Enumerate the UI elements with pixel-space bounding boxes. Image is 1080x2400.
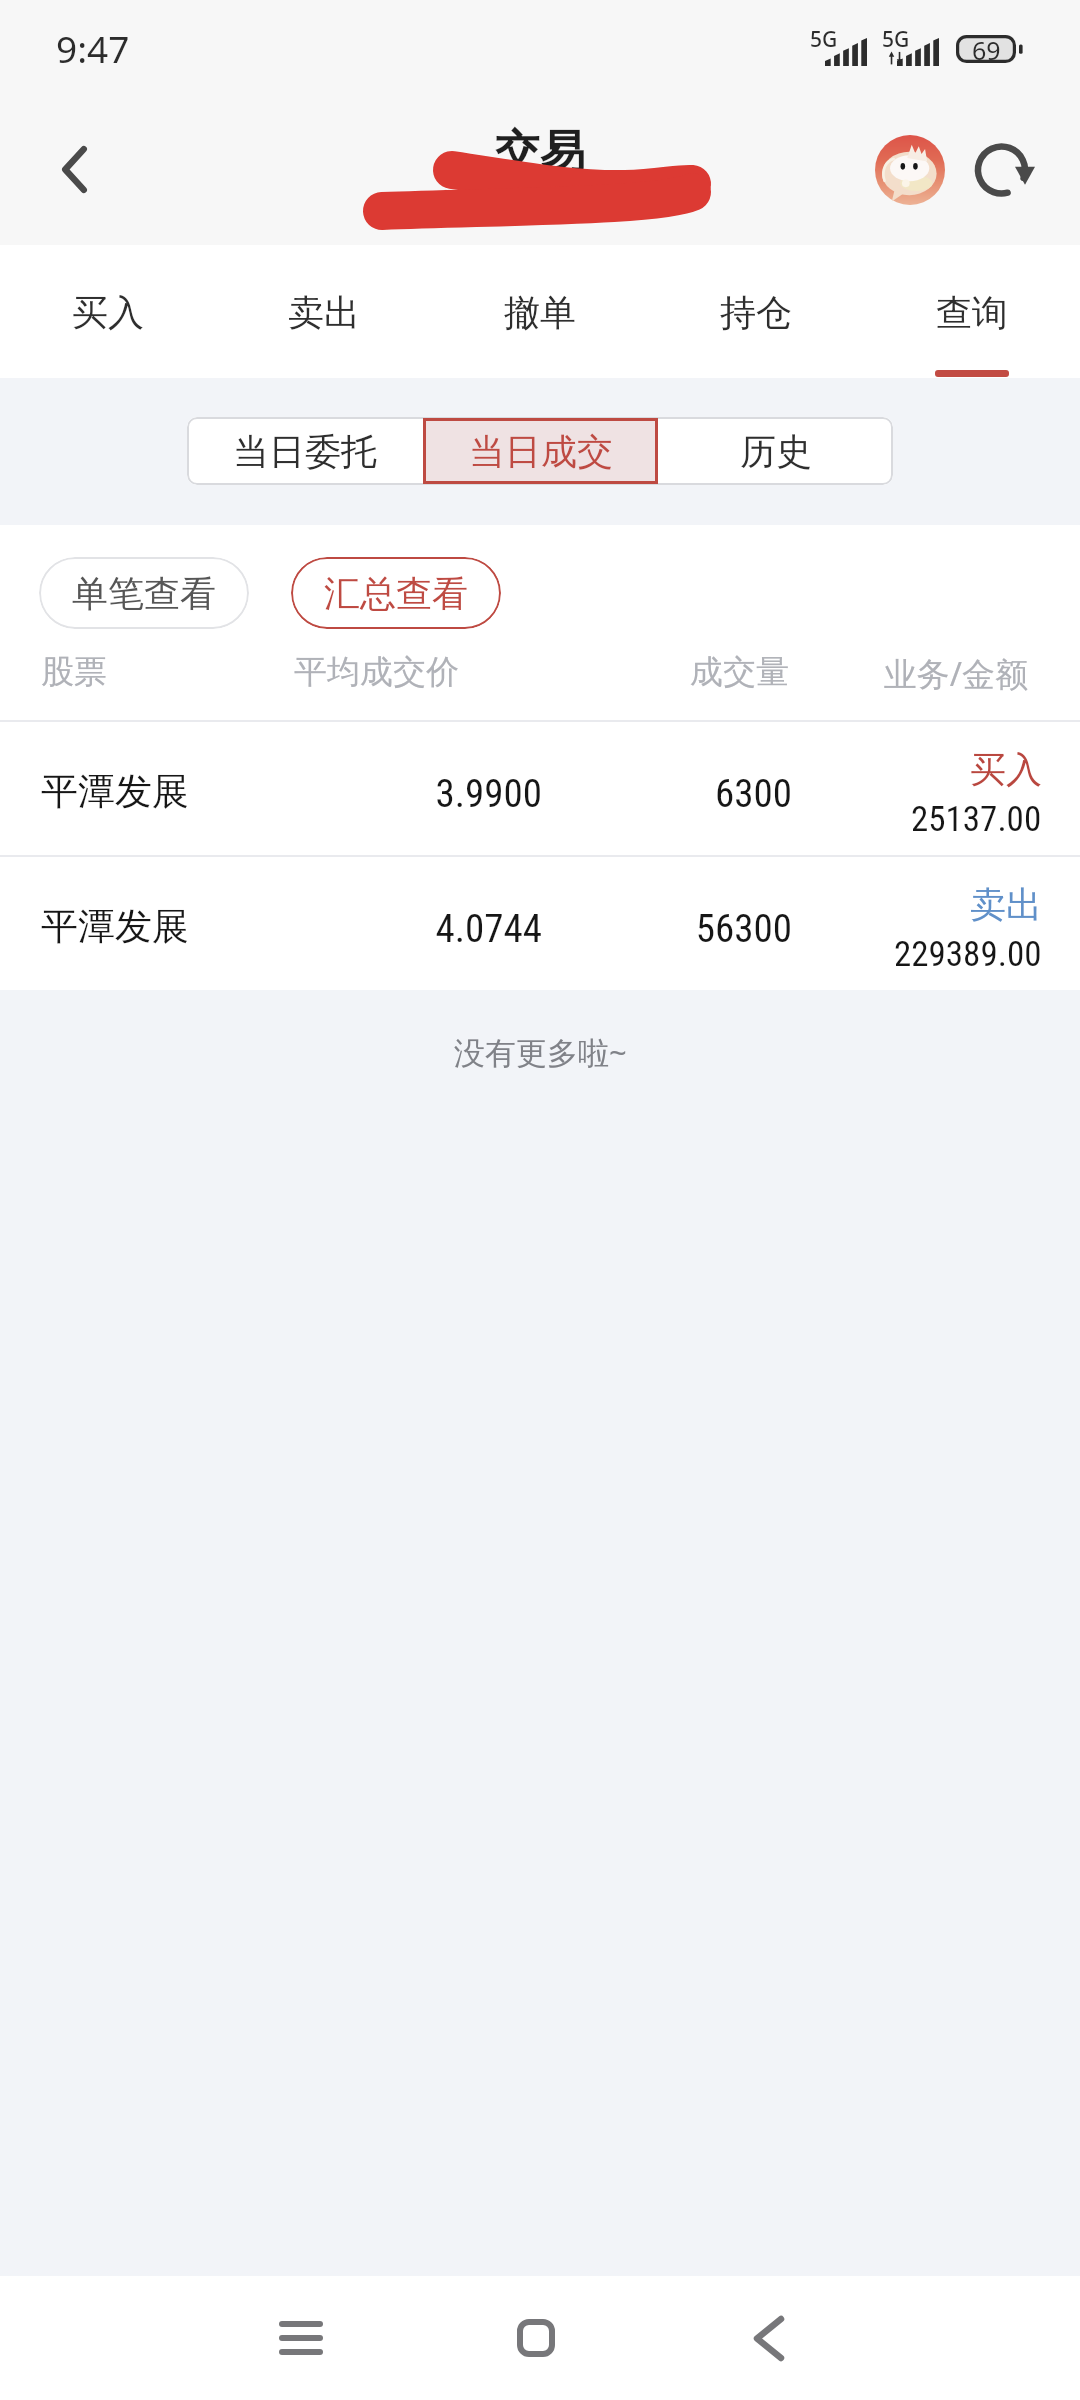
button[interactable]: 当日委托 xyxy=(187,417,423,485)
staticText: 25137.00 xyxy=(911,799,1042,840)
staticText: 卖出 xyxy=(288,290,360,335)
staticText: 撤单 xyxy=(504,290,576,335)
staticText: 9:47 xyxy=(56,23,130,73)
staticText: 平均成交价 xyxy=(0,651,459,693)
staticText: 业务/金额 xyxy=(0,651,1028,696)
staticText: 查询 xyxy=(936,290,1008,335)
button[interactable]: 平潭发展 xyxy=(0,857,1080,990)
staticText: 6300 xyxy=(0,771,792,817)
staticText: 成交量 xyxy=(0,651,789,693)
button[interactable]: Recents xyxy=(241,2276,361,2400)
staticText: 当日委托 xyxy=(233,429,377,474)
staticText: 买入 xyxy=(970,747,1042,792)
button[interactable]: 当日成交 xyxy=(423,417,658,485)
staticText: 汇总查看 xyxy=(324,571,468,616)
staticText: 当日成交 xyxy=(469,429,613,474)
staticText: 上海 A 账户 2801 xyxy=(432,183,648,221)
staticText: 56300 xyxy=(0,906,792,952)
staticText: 3.9900 xyxy=(0,771,542,817)
staticText: 5G xyxy=(882,25,910,54)
button[interactable]: Customer service xyxy=(862,122,958,218)
button[interactable]: Home xyxy=(476,2276,596,2400)
button[interactable]: 卖出 xyxy=(216,245,432,378)
button[interactable]: 持仓 xyxy=(648,245,864,378)
button[interactable]: 撤单 xyxy=(432,245,648,378)
button[interactable]: 查询 xyxy=(864,245,1080,378)
button[interactable]: 历史 xyxy=(658,417,893,485)
staticText: 历史 xyxy=(740,429,812,474)
staticText: 5G xyxy=(810,25,838,54)
staticText: 没有更多啦~ xyxy=(454,1031,627,1073)
staticText: 229389.00 xyxy=(894,934,1042,975)
staticText: 单笔查看 xyxy=(72,571,216,616)
staticText: 买入 xyxy=(72,290,144,335)
staticText: 4.0744 xyxy=(0,906,542,952)
staticText: 交易 xyxy=(495,124,585,181)
button[interactable]: Back xyxy=(26,97,122,242)
button[interactable]: 买入 xyxy=(0,245,216,378)
staticText: 股票 xyxy=(41,651,107,693)
button[interactable]: 单笔查看 xyxy=(39,557,249,629)
button[interactable]: 汇总查看 xyxy=(291,557,501,629)
button[interactable]: 平潭发展 xyxy=(0,722,1080,855)
button[interactable]: Refresh xyxy=(966,122,1062,218)
staticText: 69 xyxy=(972,33,1001,61)
staticText: 卖出 xyxy=(970,882,1042,927)
button[interactable]: Back xyxy=(709,2276,829,2400)
staticText: 平潭发展 xyxy=(41,768,189,815)
staticText: 持仓 xyxy=(720,290,792,335)
staticText: 平潭发展 xyxy=(41,903,189,950)
